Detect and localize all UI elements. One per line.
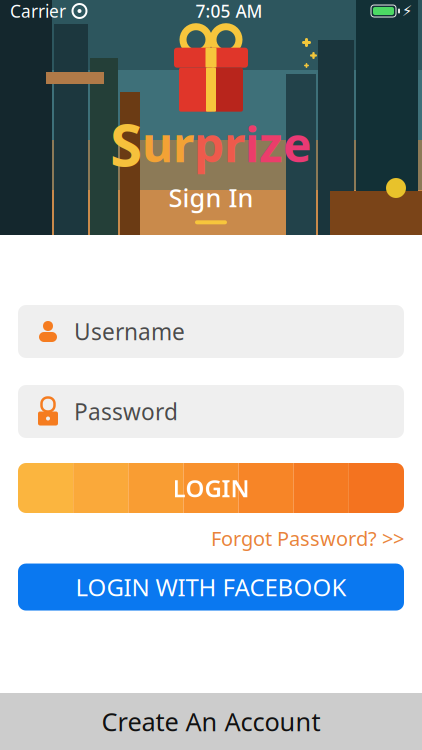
staticText: S — [110, 105, 142, 183]
staticText: 7:05 AM — [195, 0, 262, 22]
staticText: ⚡︎ — [402, 3, 412, 19]
staticText: pr — [194, 112, 245, 175]
staticText: Username — [74, 316, 185, 346]
staticText: Forgot Password? >> — [211, 525, 404, 552]
staticText: Password — [74, 396, 178, 426]
staticText: Create An Account — [101, 705, 320, 738]
staticText: Sign In — [168, 181, 253, 214]
button[interactable]: Password — [18, 385, 404, 438]
button[interactable]: Forgot Password? >> — [211, 521, 404, 556]
staticText: LOGIN — [172, 472, 249, 504]
staticText: e — [283, 112, 312, 175]
button[interactable]: LOGIN WITH FACEBOOK — [18, 564, 404, 611]
staticText: ur — [142, 112, 194, 175]
staticText: Carrier — [10, 0, 66, 22]
staticText: iz — [245, 112, 283, 175]
button[interactable]: Create An Account — [0, 693, 422, 750]
staticText: LOGIN WITH FACEBOOK — [75, 571, 346, 603]
button[interactable]: Username — [18, 305, 404, 358]
button[interactable]: LOGIN — [18, 463, 404, 513]
